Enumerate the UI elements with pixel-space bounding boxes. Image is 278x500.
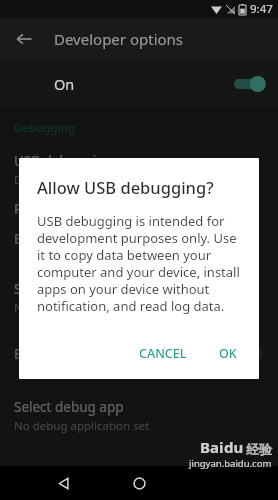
- staticText: du: [224, 437, 244, 457]
- staticText: OK: [219, 345, 237, 362]
- staticText: Developer options: [54, 29, 184, 49]
- staticText: No debug application set: [14, 418, 150, 434]
- button[interactable]: Back: [48, 468, 78, 498]
- button[interactable]: On: [0, 60, 278, 108]
- staticText: Revoke USB debugging authorizations: [14, 200, 258, 218]
- button[interactable]: Enable view attribute inspection toggle: [232, 344, 266, 364]
- staticText: No mock location app set: [14, 300, 151, 316]
- button[interactable]: Back: [8, 23, 40, 55]
- staticText: USB debugging is intended for developmen…: [37, 212, 245, 315]
- staticText: Debugging: [14, 120, 76, 136]
- button[interactable]: Developer options toggle: [232, 74, 266, 94]
- button[interactable]: Enable view attribute inspection: [0, 332, 278, 376]
- button[interactable]: OK: [209, 339, 247, 368]
- staticText: Enable view attribute inspection: [14, 345, 217, 363]
- button[interactable]: Home: [124, 468, 154, 498]
- staticText: CANCEL: [139, 345, 187, 362]
- button[interactable]: Select debug app: [0, 392, 278, 440]
- staticText: Bai: [200, 437, 224, 457]
- button[interactable]: USB debugging: [0, 146, 278, 194]
- button[interactable]: CANCEL: [129, 339, 197, 368]
- staticText: Select debug app: [14, 398, 124, 416]
- staticText: 9:47: [250, 1, 273, 17]
- staticText: Allow USB debugging?: [37, 176, 214, 198]
- staticText: USB debugging: [14, 152, 113, 170]
- button[interactable]: Select mock location app: [0, 274, 278, 322]
- staticText: 经验: [246, 441, 272, 457]
- staticText: Select mock location app: [14, 280, 172, 298]
- staticText: On: [54, 74, 75, 94]
- staticText: jingyan.baidu.com: [189, 457, 272, 470]
- staticText: Bug report shortcut: [14, 230, 140, 248]
- button[interactable]: Revoke USB debugging authorizations: [0, 194, 278, 224]
- staticText: Debug mode when USB is connected: [14, 172, 214, 188]
